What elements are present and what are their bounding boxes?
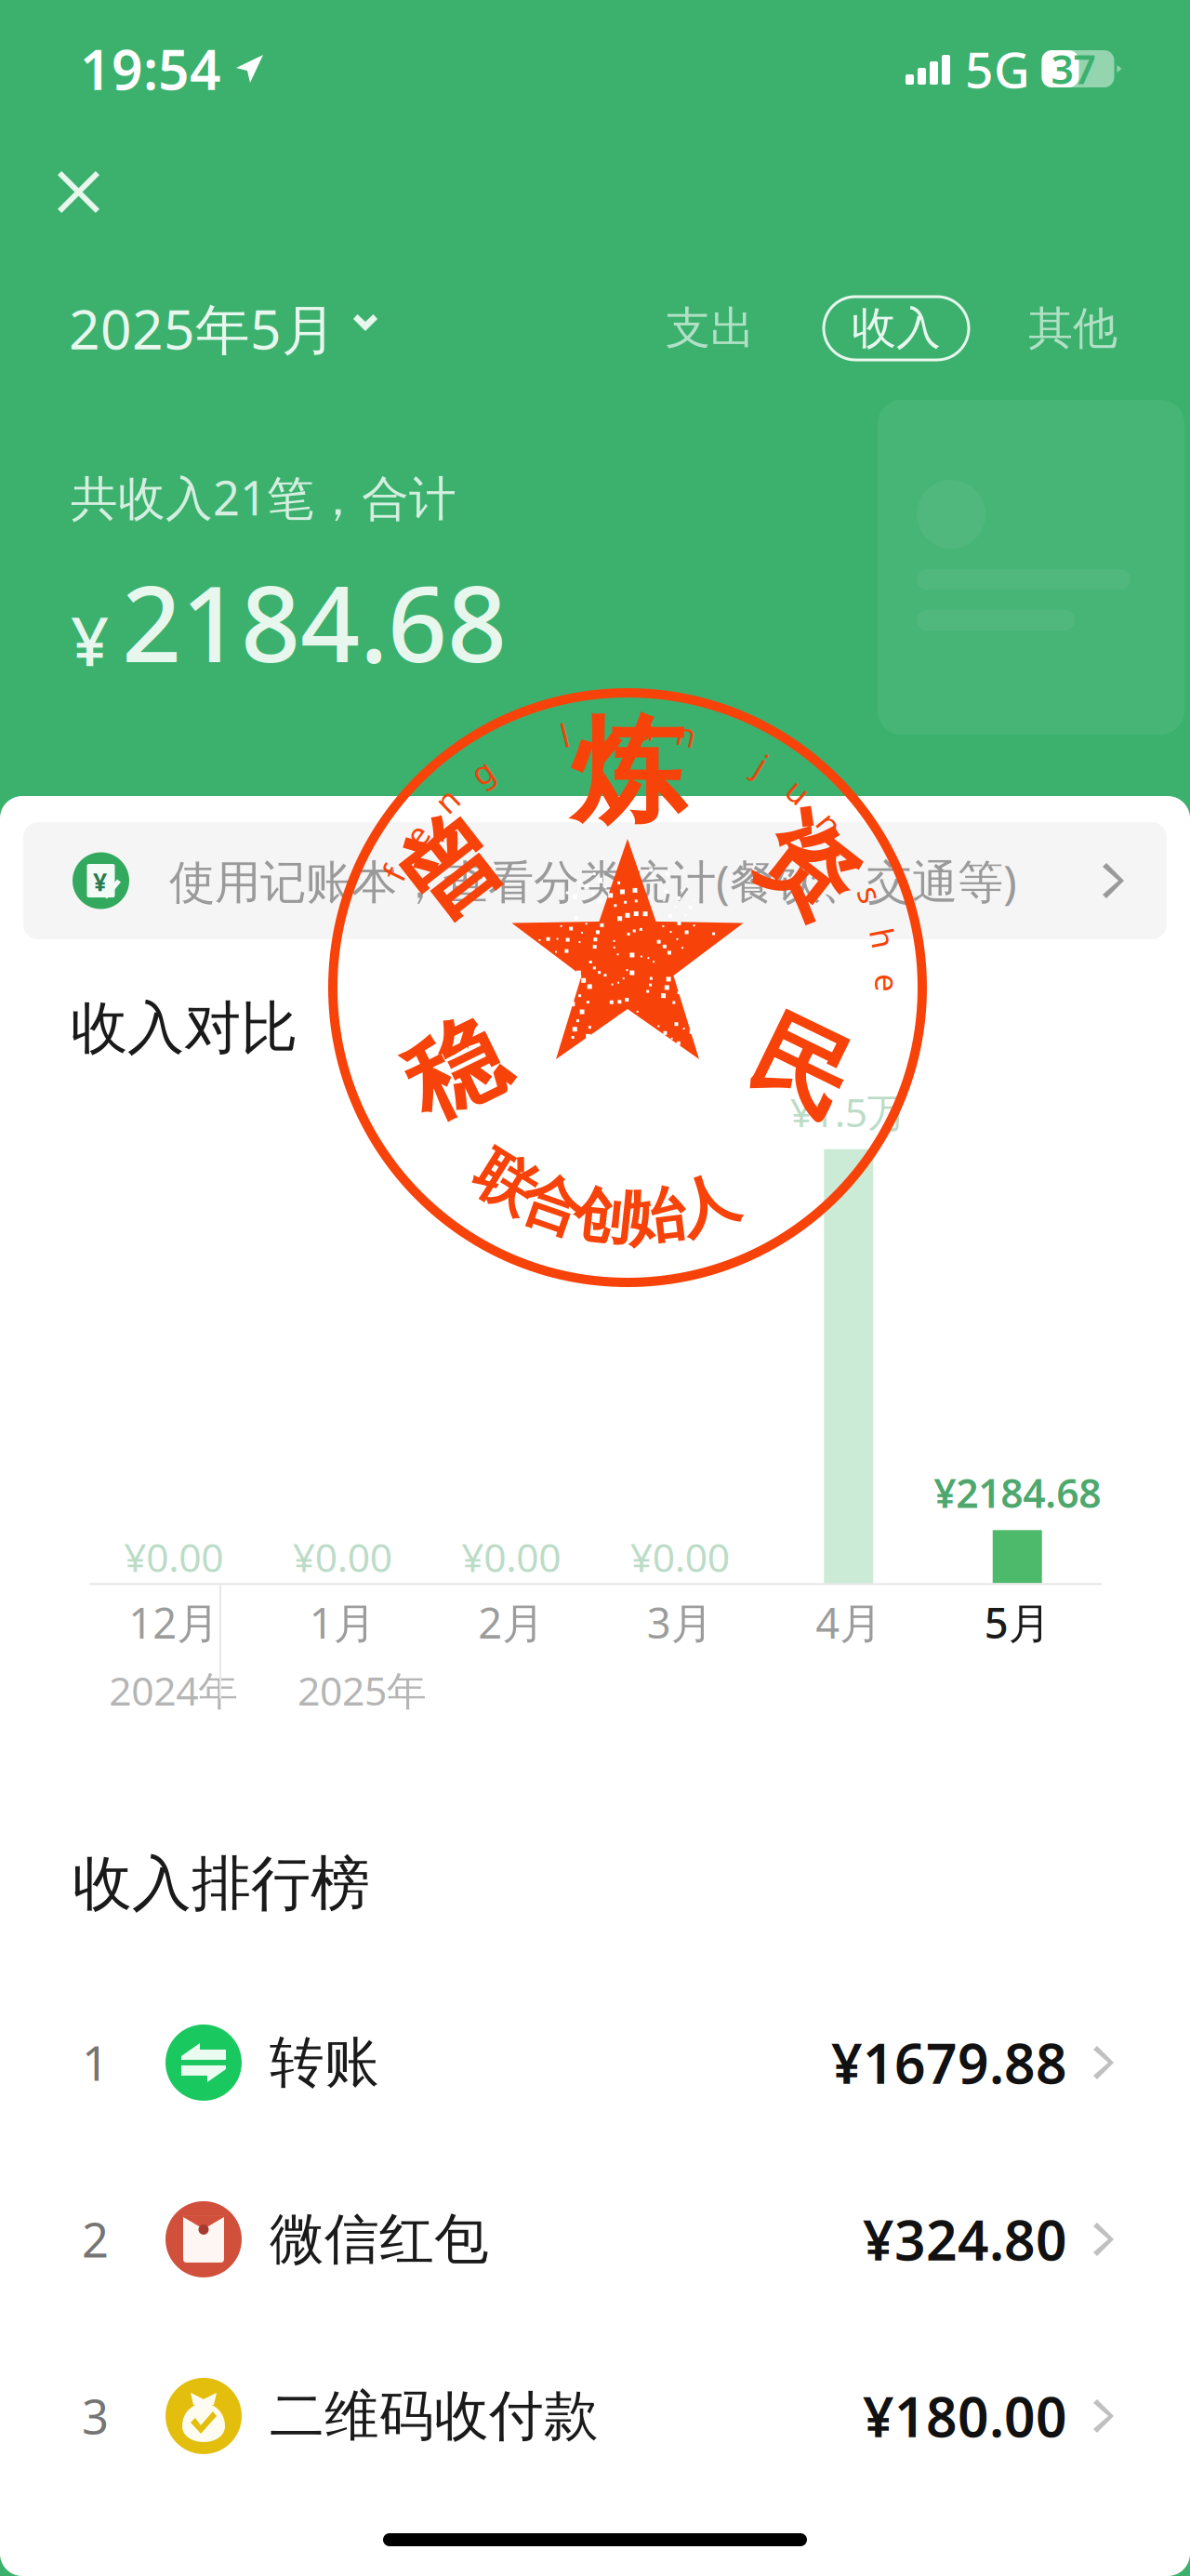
staticText: 2 bbox=[82, 2208, 109, 2271]
staticText: 2184.68 bbox=[122, 553, 507, 691]
staticText: 收入对比 bbox=[71, 993, 297, 1063]
staticText: j bbox=[757, 743, 766, 786]
staticText: ¥0.00 bbox=[124, 1530, 223, 1583]
staticText: l bbox=[560, 714, 569, 756]
staticText: 联 bbox=[476, 1147, 535, 1220]
staticText: 2月 bbox=[478, 1594, 544, 1650]
staticText: a bbox=[637, 706, 654, 749]
staticText: 微信红包 bbox=[270, 2206, 489, 2273]
staticText: n bbox=[820, 802, 840, 845]
staticText: 5G bbox=[965, 36, 1030, 102]
staticText: 1月 bbox=[309, 1594, 375, 1650]
staticText: 其他 bbox=[1028, 301, 1117, 356]
staticText: 3 bbox=[82, 2385, 109, 2447]
staticText: s bbox=[863, 873, 878, 916]
staticText: ¥0.00 bbox=[293, 1530, 392, 1583]
staticText: 资 bbox=[758, 809, 854, 928]
staticText: 4月 bbox=[816, 1594, 882, 1650]
staticText: 使用记账本，查看分类统计(餐饮、交通等) bbox=[169, 850, 1017, 911]
staticText: 5月 bbox=[984, 1594, 1050, 1650]
staticText: 二维码收付款 bbox=[270, 2382, 599, 2450]
staticText: ¥ bbox=[71, 596, 109, 684]
staticText: 12月 bbox=[128, 1594, 219, 1650]
staticText: 曾 bbox=[401, 807, 497, 926]
staticText: 收入 bbox=[852, 301, 941, 356]
staticText: 2025年 bbox=[297, 1664, 427, 1716]
staticText: 民 bbox=[754, 1010, 851, 1129]
staticText: 人 bbox=[677, 1168, 736, 1241]
button[interactable]: 3 bbox=[0, 2328, 1190, 2504]
staticText: ¥180.00 bbox=[863, 2380, 1067, 2452]
button[interactable]: 支出 bbox=[666, 293, 755, 364]
staticText: e bbox=[879, 962, 897, 1004]
staticText: ¥ bbox=[93, 865, 107, 898]
staticText: ¥1.5万 bbox=[790, 1085, 907, 1138]
staticText: u bbox=[789, 770, 808, 813]
staticText: 转账 bbox=[270, 2029, 379, 2096]
staticText: ¥0.00 bbox=[630, 1530, 730, 1583]
button[interactable]: 1 bbox=[0, 1974, 1190, 2151]
button[interactable]: 2 bbox=[0, 2151, 1190, 2328]
staticText: ¥324.80 bbox=[863, 2203, 1067, 2276]
staticText: h bbox=[873, 917, 893, 959]
staticText: 2024年 bbox=[109, 1664, 238, 1716]
staticText: 1 bbox=[82, 2031, 109, 2094]
button[interactable]: 收入 bbox=[824, 297, 969, 360]
staticText: e bbox=[408, 813, 426, 856]
staticText: n bbox=[676, 713, 696, 755]
button[interactable]: Close bbox=[0, 100, 126, 261]
staticText: 共收入21笔，合计 bbox=[71, 466, 456, 528]
staticText: 37 bbox=[1051, 42, 1096, 95]
staticText: 炼 bbox=[570, 702, 685, 842]
staticText: i bbox=[596, 707, 604, 750]
staticText: 3月 bbox=[647, 1594, 713, 1650]
staticText: 收入排行榜 bbox=[73, 1847, 370, 1920]
staticText: ¥1679.88 bbox=[831, 2026, 1067, 2099]
staticText: 稳 bbox=[406, 1010, 503, 1129]
staticText: 合 bbox=[523, 1169, 582, 1242]
staticText: n bbox=[437, 779, 456, 822]
staticText: 19:54 bbox=[80, 33, 221, 105]
staticText: 2025年5月 bbox=[69, 292, 337, 364]
button[interactable]: 其他 bbox=[1028, 293, 1117, 364]
staticText: ¥2184.68 bbox=[934, 1466, 1101, 1519]
button[interactable]: ¥ bbox=[23, 822, 1167, 939]
staticText: ¥0.00 bbox=[461, 1530, 561, 1583]
button[interactable]: 2025年5月 bbox=[0, 292, 379, 364]
staticText: 支出 bbox=[666, 301, 755, 356]
staticText: 始 bbox=[626, 1180, 685, 1253]
staticText: f bbox=[388, 852, 399, 895]
staticText: 创 bbox=[574, 1180, 633, 1253]
staticText: g bbox=[472, 750, 492, 793]
